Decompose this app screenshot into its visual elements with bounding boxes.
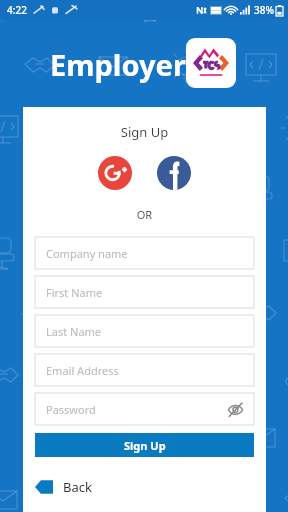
staticText: Password	[46, 402, 96, 417]
staticText: First Name	[46, 285, 103, 300]
button[interactable]: Last Name	[35, 315, 254, 347]
button[interactable]: Sign up with Google	[98, 156, 132, 190]
button[interactable]: Back	[35, 474, 254, 500]
button[interactable]: TCS logo	[186, 38, 236, 88]
button[interactable]: Email Address	[35, 354, 254, 386]
staticText: Last Name	[46, 324, 102, 339]
staticText: Company name	[46, 246, 128, 261]
staticText: Sign Up	[23, 123, 266, 141]
button[interactable]: Sign Up	[35, 433, 254, 457]
button[interactable]: First Name	[35, 276, 254, 308]
staticText: Employer	[50, 45, 186, 84]
button[interactable]: Password	[35, 393, 254, 425]
staticText: OR	[23, 207, 266, 222]
staticText: 38%	[254, 3, 274, 17]
button[interactable]: Company name	[35, 237, 254, 269]
staticText: Sign Up	[124, 438, 166, 453]
staticText: 4:22	[7, 3, 27, 17]
staticText: Email Address	[46, 363, 119, 378]
staticText: Back	[63, 478, 92, 496]
other: Show password	[227, 401, 244, 418]
button[interactable]: Sign up with Facebook	[157, 156, 191, 190]
